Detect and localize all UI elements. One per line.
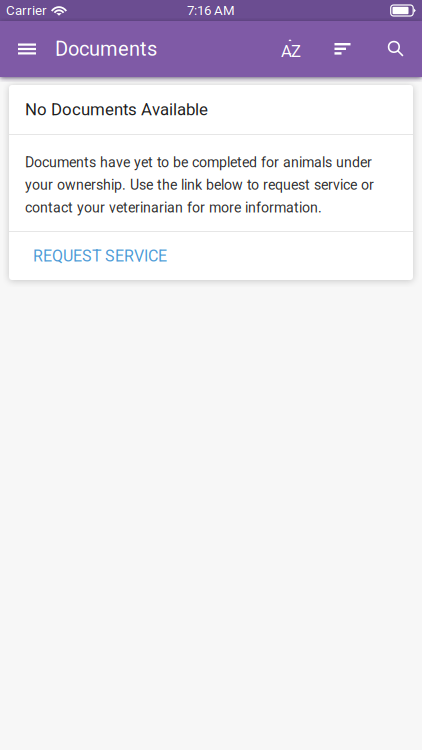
button[interactable]: Sort A to Z xyxy=(271,21,309,77)
button[interactable]: Menu xyxy=(8,21,46,77)
staticText: Documents xyxy=(55,37,157,61)
staticText: No Documents Available xyxy=(25,100,208,119)
button[interactable]: Filter xyxy=(309,21,376,77)
staticText: Carrier xyxy=(6,3,47,18)
staticText: Z xyxy=(291,41,301,61)
staticText: 7:16 AM xyxy=(187,3,235,18)
staticText: REQUEST SERVICE xyxy=(33,247,167,265)
button[interactable]: REQUEST SERVICE xyxy=(9,232,413,280)
button[interactable]: Search xyxy=(376,21,416,77)
staticText: Documents have yet to be completed for a… xyxy=(25,154,374,216)
staticText: A xyxy=(281,41,292,61)
